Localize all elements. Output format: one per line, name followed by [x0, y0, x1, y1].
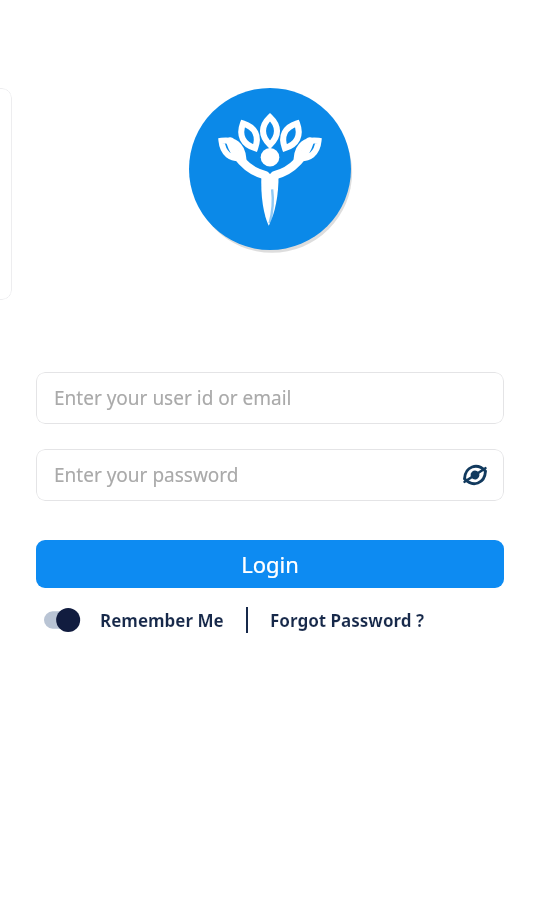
button[interactable]: Login: [36, 540, 504, 588]
button[interactable]: Enter your user id or email: [36, 372, 504, 424]
staticText: Enter your password: [54, 462, 239, 488]
staticText: Enter your user id or email: [54, 385, 292, 411]
button[interactable]: Show password: [458, 458, 492, 492]
staticText: Forgot Password ?: [270, 609, 425, 632]
staticText: Login: [241, 549, 299, 579]
staticText: Remember Me: [100, 609, 224, 632]
button[interactable]: Forgot Password ?: [270, 605, 425, 636]
button[interactable]: Remember Me: [44, 604, 224, 636]
button[interactable]: Enter your password: [36, 449, 504, 501]
